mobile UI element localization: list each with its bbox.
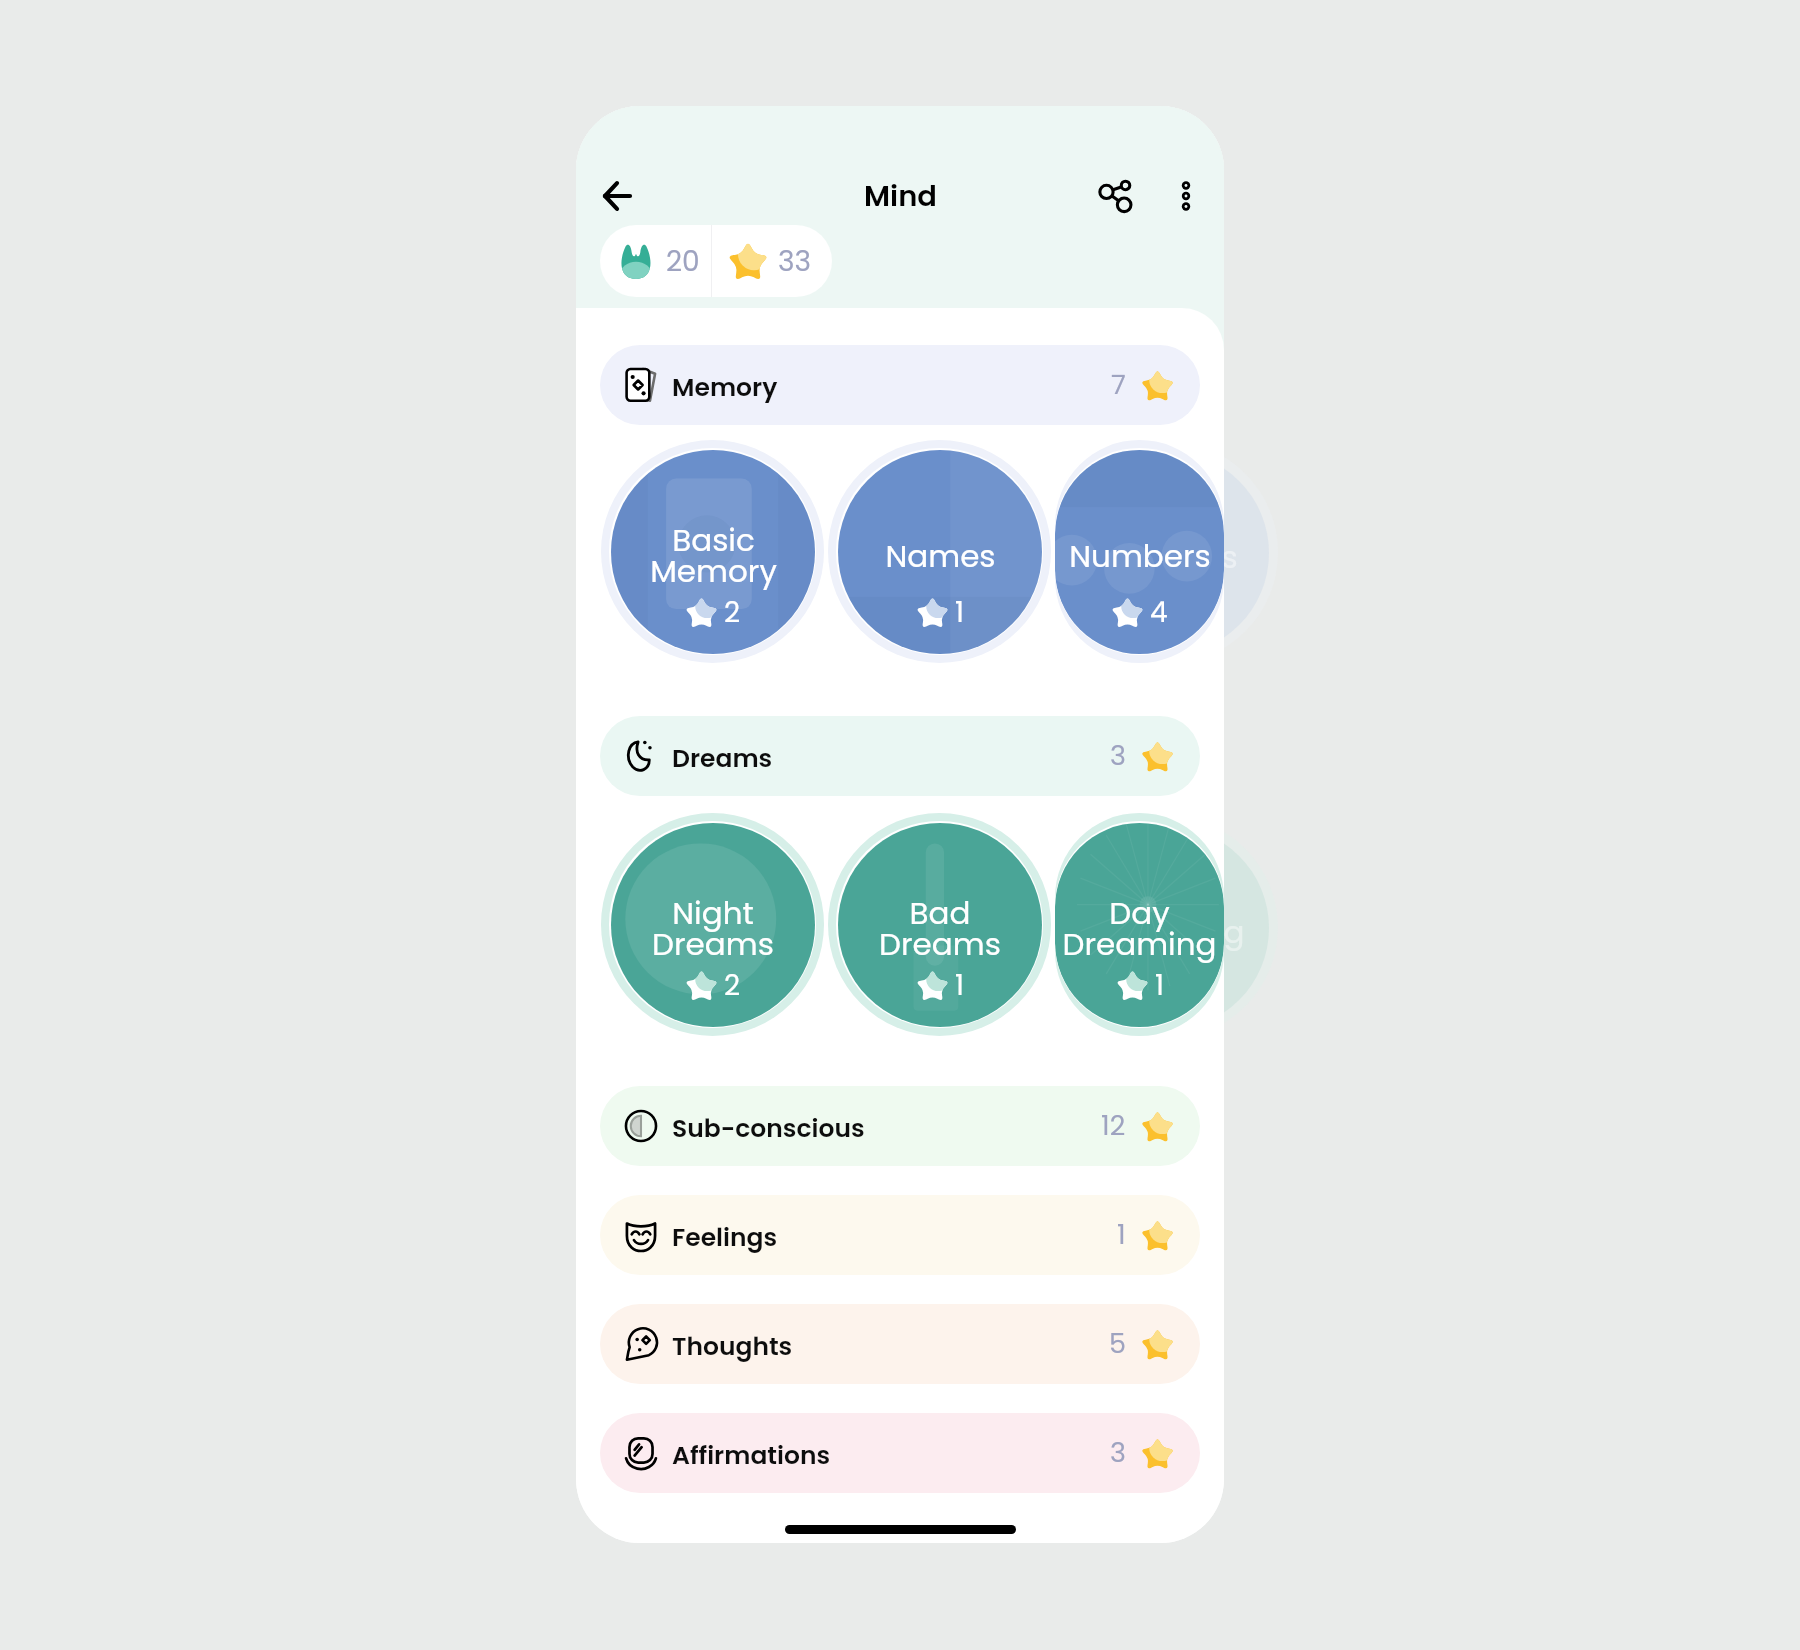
staticText: Dreaming	[1090, 910, 1245, 953]
staticText: 5	[1109, 1325, 1126, 1363]
staticText: Dreams	[672, 741, 773, 776]
staticText: Day Dreaming	[1062, 891, 1217, 966]
staticText: 1	[1117, 1216, 1126, 1254]
button[interactable]: Basic Memory	[601, 440, 824, 663]
button[interactable]: Feelings	[600, 1195, 1200, 1275]
staticText: 1	[1155, 966, 1164, 1005]
button[interactable]: Affirmations	[600, 1413, 1200, 1493]
staticText: Sub-conscious	[672, 1111, 865, 1146]
staticText: 4	[1150, 593, 1168, 632]
staticText: Memory	[672, 370, 778, 405]
staticText: 20	[666, 242, 700, 281]
staticText: 1	[955, 966, 964, 1005]
staticText: 2	[724, 966, 741, 1005]
button[interactable]: Bad Dreams	[828, 813, 1051, 1036]
staticText: 2	[724, 593, 741, 632]
staticText: Mind	[864, 176, 937, 217]
staticText: Numbers	[1096, 535, 1238, 578]
staticText: Thoughts	[672, 1329, 793, 1364]
button[interactable]: Numbers	[1055, 440, 1224, 663]
staticText: Bad Dreams	[879, 891, 1001, 966]
button[interactable]: Memory	[600, 345, 1200, 425]
staticText: Feelings	[672, 1220, 778, 1255]
staticText: 7	[1111, 366, 1126, 404]
staticText: Basic Memory	[650, 518, 777, 593]
button[interactable]: Share	[1080, 160, 1152, 232]
button[interactable]: More options	[1152, 162, 1220, 230]
button[interactable]: 20	[600, 225, 711, 297]
button[interactable]: 33	[712, 225, 832, 297]
button[interactable]: Dreams	[600, 716, 1200, 796]
staticText: Names	[885, 534, 996, 577]
button[interactable]: Thoughts	[600, 1304, 1200, 1384]
staticText: 3	[1110, 1434, 1126, 1472]
staticText: Numbers	[1069, 534, 1211, 577]
staticText: Affirmations	[672, 1438, 831, 1473]
staticText: 1	[955, 593, 964, 632]
button[interactable]: Sub-conscious	[600, 1086, 1200, 1166]
staticText: Night Dreams	[652, 891, 774, 966]
staticText: 3	[1110, 737, 1126, 775]
button[interactable]: Names	[828, 440, 1051, 663]
staticText: 33	[778, 242, 811, 281]
staticText: 12	[1101, 1107, 1126, 1145]
button[interactable]: Day Dreaming	[1055, 813, 1224, 1036]
button[interactable]: Back	[580, 159, 654, 233]
button[interactable]: Night Dreams	[601, 813, 824, 1036]
